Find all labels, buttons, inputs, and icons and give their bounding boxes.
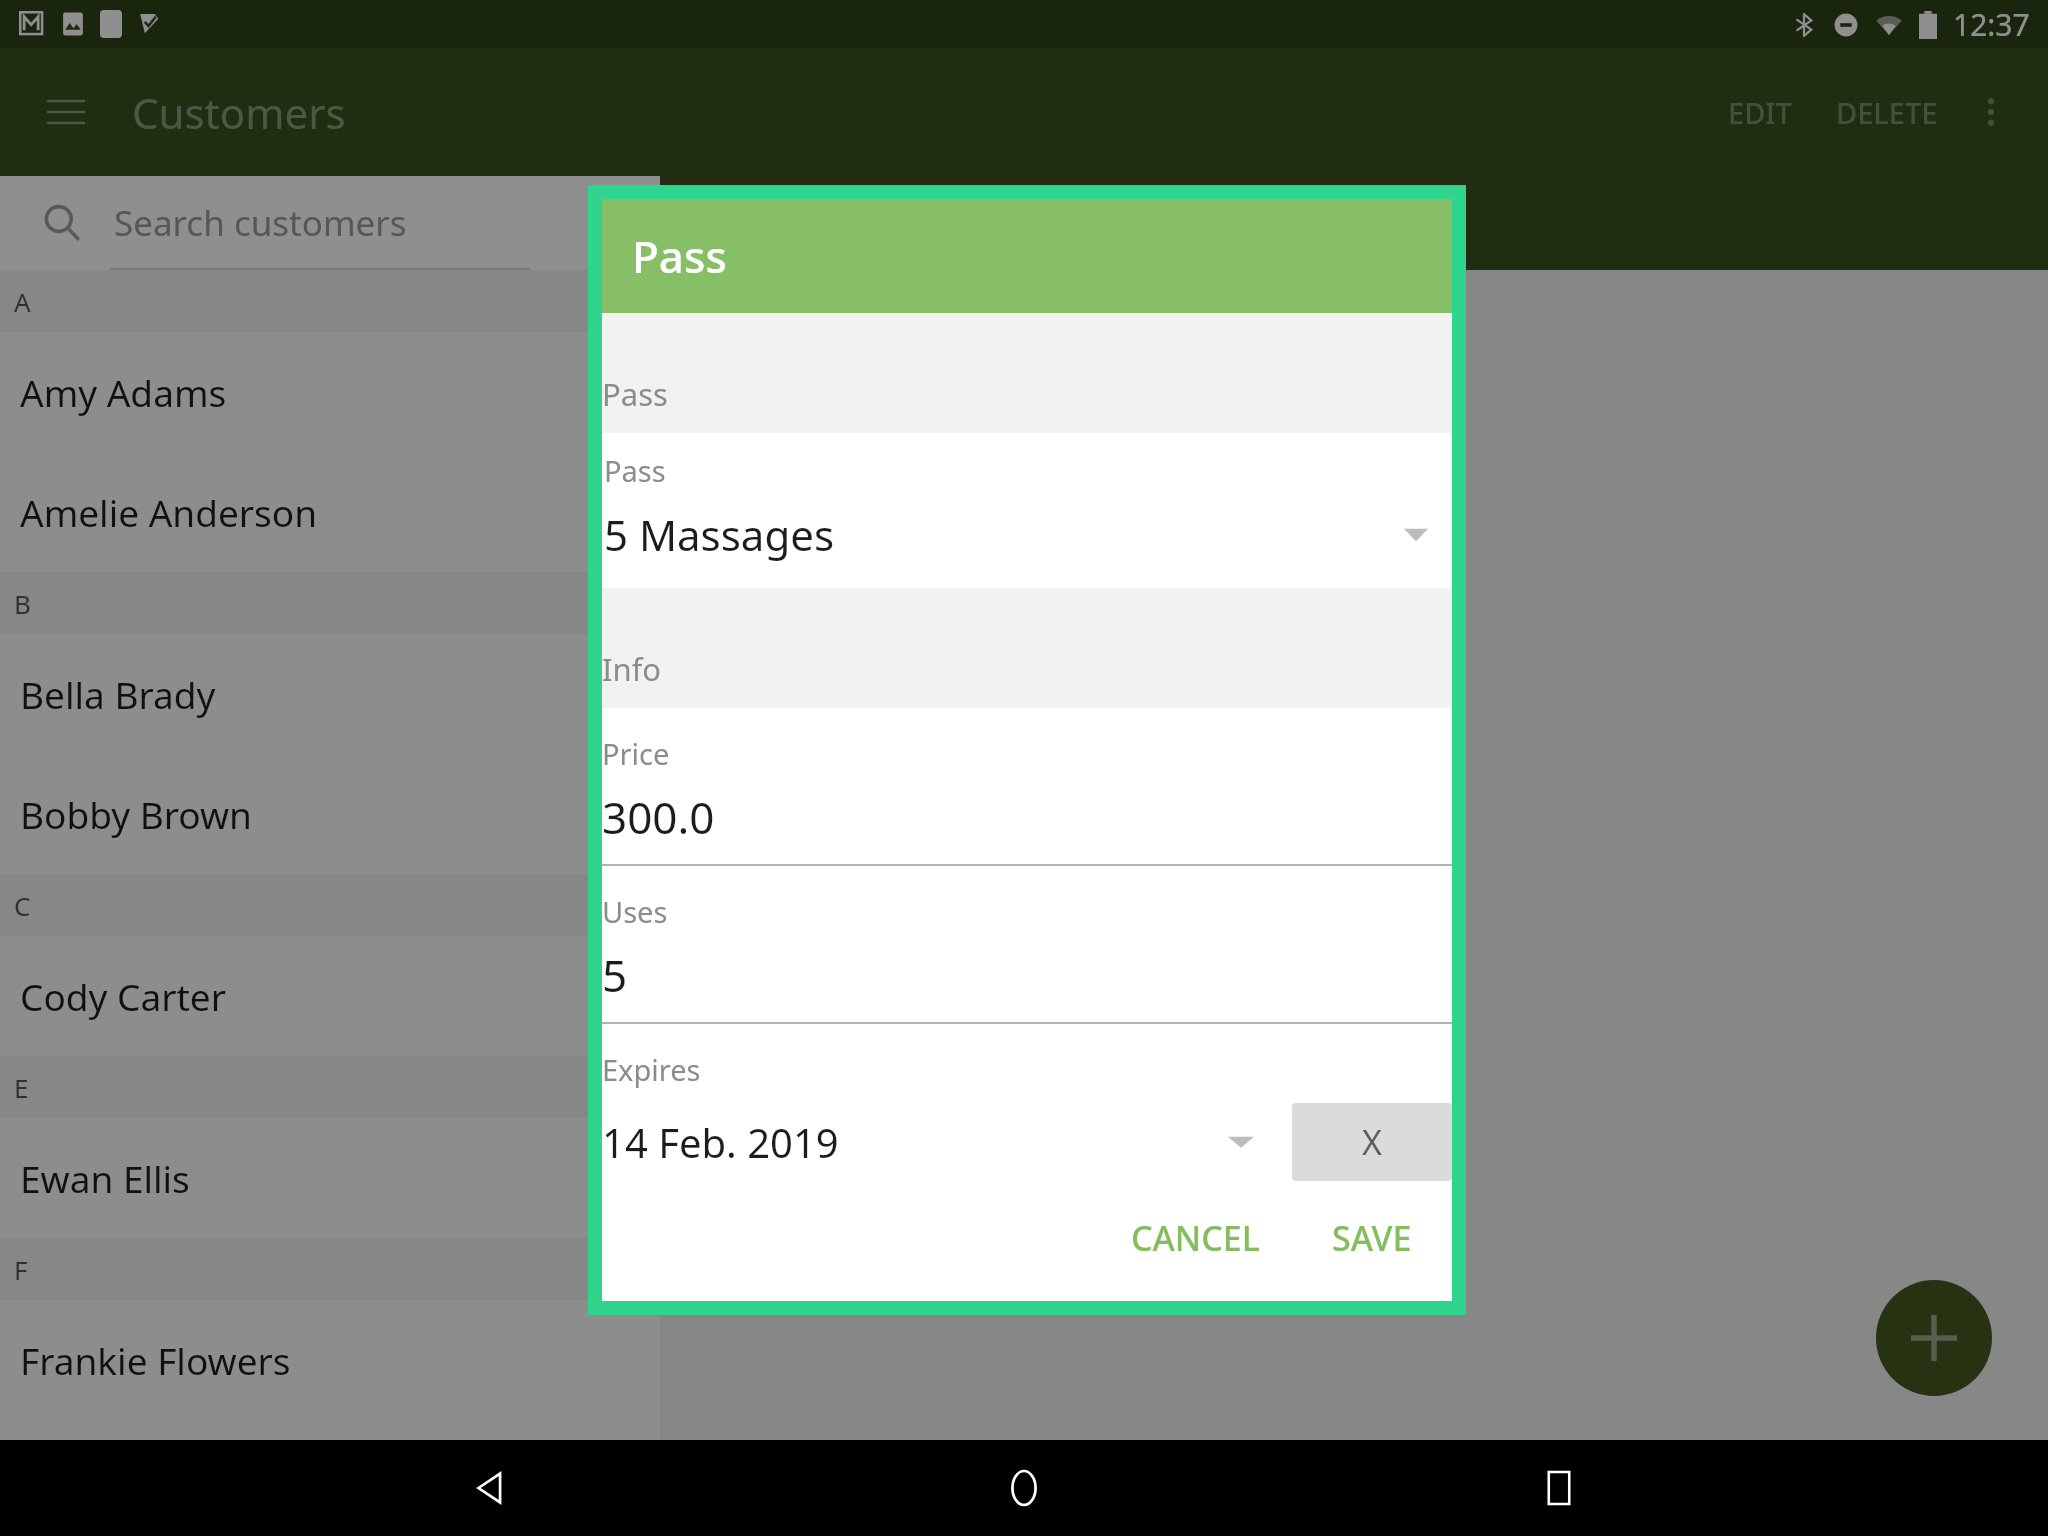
staticText: Pass [632, 226, 727, 286]
button[interactable]: Frankie Flowers [0, 1300, 660, 1420]
staticText: Frankie Flowers [20, 1335, 291, 1385]
staticText: Uses [602, 892, 668, 931]
staticText: Info [602, 648, 662, 690]
staticText: 300.0 [602, 787, 715, 847]
button[interactable]: X [1292, 1103, 1452, 1181]
staticText: 5 [602, 945, 628, 1005]
staticText: X [1362, 1119, 1382, 1165]
staticText: Pass [604, 451, 666, 490]
button[interactable]: EDIT [1706, 75, 1814, 150]
staticText: 14 Feb. 2019 [602, 1115, 839, 1169]
staticText: 5 Massages [604, 506, 835, 563]
staticText: Expires [602, 1050, 701, 1089]
staticText: Bobby Brown [20, 789, 252, 839]
staticText: 12:37 [1953, 4, 2030, 45]
staticText: Search customers [114, 199, 407, 247]
button[interactable]: Bella Brady [0, 634, 660, 754]
button[interactable]: Back [445, 1443, 535, 1533]
staticText: F [14, 1252, 28, 1287]
staticText: Customers [132, 84, 346, 141]
staticText: Bella Brady [20, 669, 216, 719]
button[interactable]: Cody Carter [0, 936, 660, 1056]
button[interactable]: Uses [602, 866, 1452, 1024]
staticText: Amelie Anderson [20, 487, 318, 537]
staticText: SAVE [1332, 1215, 1412, 1261]
button[interactable]: DELETE [1814, 75, 1960, 150]
button[interactable]: SAVE [1306, 1197, 1438, 1279]
button[interactable]: PHOTOS [845, 182, 1037, 265]
button[interactable]: Bobby Brown [0, 754, 660, 874]
button[interactable]: 14 Feb. 2019 [602, 1115, 1254, 1169]
staticText: B [14, 586, 31, 621]
button[interactable]: Home [979, 1443, 1069, 1533]
staticText: DELETE [1836, 93, 1938, 132]
staticText: Amy Adams [20, 367, 227, 417]
button[interactable]: Amy Adams [0, 332, 660, 452]
staticText: A [14, 284, 31, 319]
button[interactable]: Price [602, 708, 1452, 866]
button[interactable]: FORMS [670, 182, 845, 265]
button[interactable]: More options [1960, 81, 2022, 143]
staticText: E [14, 1070, 29, 1105]
button[interactable]: Menu [34, 80, 98, 144]
button[interactable]: CANCEL [1105, 1197, 1286, 1279]
staticText: C [14, 888, 31, 923]
staticText: Cody Carter [20, 971, 226, 1021]
staticText: Ewan Ellis [20, 1153, 190, 1203]
button[interactable]: Add [1876, 1280, 1992, 1396]
button[interactable]: STATS [1037, 182, 1193, 265]
staticText: Pass [602, 373, 668, 415]
button[interactable]: Amelie Anderson [0, 452, 660, 572]
button[interactable]: Ewan Ellis [0, 1118, 660, 1238]
staticText: EDIT [1728, 93, 1792, 132]
button[interactable]: Pass [602, 433, 1452, 588]
button[interactable]: Recent apps [1514, 1443, 1604, 1533]
staticText: Price [602, 734, 670, 773]
staticText: CANCEL [1131, 1215, 1260, 1261]
